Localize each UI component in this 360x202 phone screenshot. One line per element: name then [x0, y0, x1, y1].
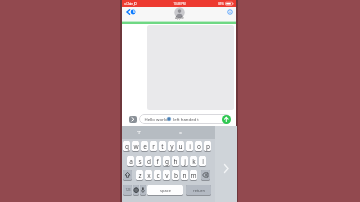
button[interactable]: "I" [133, 128, 145, 136]
staticText: t [161, 142, 164, 151]
staticText: l [202, 157, 204, 166]
staticText: space [160, 188, 171, 193]
button[interactable] [222, 115, 231, 124]
staticText: ul Zain JO [124, 2, 137, 6]
button[interactable] [168, 141, 175, 152]
staticText: i [189, 142, 191, 151]
staticText: r [152, 142, 155, 151]
button[interactable] [190, 170, 197, 181]
staticText: Apple [175, 16, 184, 20]
staticText: b [174, 171, 178, 180]
button[interactable] [186, 185, 211, 196]
staticText: p [206, 142, 210, 151]
button[interactable] [181, 170, 188, 181]
button[interactable] [190, 156, 197, 167]
button[interactable] [195, 141, 202, 152]
button[interactable] [154, 170, 161, 181]
staticText: "I" [137, 130, 141, 135]
button[interactable] [140, 185, 146, 196]
staticText: 6 [133, 10, 135, 14]
button[interactable] [123, 170, 132, 181]
button[interactable] [201, 170, 210, 181]
staticText: 123 [125, 188, 131, 192]
staticText: s [138, 157, 142, 166]
button[interactable] [141, 141, 148, 152]
button[interactable] [163, 156, 170, 167]
button[interactable] [154, 156, 161, 167]
button[interactable]: Hello world [139, 114, 231, 124]
staticText: left handed t [173, 116, 199, 122]
staticText: e [143, 142, 147, 151]
button[interactable]: o [174, 128, 186, 136]
staticText: f [156, 157, 159, 166]
button[interactable] [145, 156, 152, 167]
button[interactable] [204, 141, 211, 152]
button[interactable] [129, 116, 137, 123]
button[interactable] [172, 156, 179, 167]
staticText: y [170, 142, 174, 151]
staticText: c [156, 171, 160, 180]
button[interactable] [172, 170, 179, 181]
button[interactable] [145, 170, 152, 181]
staticText: 10:38 PM [173, 2, 186, 6]
button[interactable] [186, 141, 193, 152]
staticText: return [193, 188, 205, 193]
button[interactable] [159, 141, 166, 152]
staticText: v [165, 171, 169, 180]
staticText: d [147, 157, 151, 166]
staticText: u [178, 142, 183, 151]
button[interactable]: 6 [125, 8, 136, 16]
button[interactable] [123, 185, 132, 196]
button[interactable] [227, 9, 233, 15]
staticText: w [133, 142, 139, 151]
staticText: o [197, 142, 201, 151]
button[interactable] [181, 156, 188, 167]
staticText: j [184, 157, 186, 166]
button[interactable] [199, 156, 206, 167]
button[interactable] [127, 156, 134, 167]
staticText: k [192, 157, 196, 166]
staticText: Hello world [144, 116, 168, 122]
button[interactable] [147, 185, 183, 196]
button[interactable] [136, 156, 143, 167]
staticText: z [138, 171, 142, 180]
button[interactable] [163, 170, 170, 181]
button[interactable] [132, 141, 139, 152]
staticText: g [165, 157, 169, 166]
button[interactable] [177, 141, 184, 152]
button[interactable] [150, 141, 157, 152]
button[interactable] [123, 141, 130, 152]
button[interactable] [215, 126, 237, 202]
staticText: a [129, 157, 133, 166]
staticText: x [147, 171, 151, 180]
button[interactable] [133, 185, 139, 196]
staticText: 85% [218, 2, 224, 6]
staticText: q [125, 142, 129, 151]
staticText: m [190, 171, 197, 180]
staticText: o [179, 130, 182, 135]
staticText: h [173, 157, 178, 166]
staticText: n [182, 171, 187, 180]
button[interactable] [136, 170, 143, 181]
